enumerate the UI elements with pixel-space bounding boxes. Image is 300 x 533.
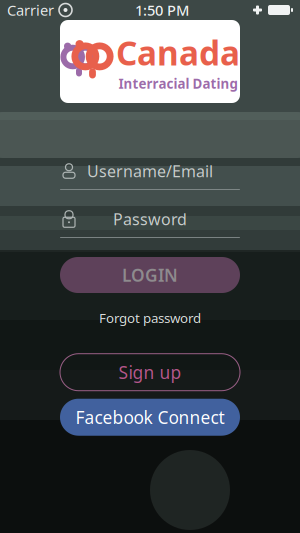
button[interactable]: LOGIN <box>60 257 240 293</box>
button[interactable]: Sign up <box>60 354 240 391</box>
staticText: Carrier <box>7 0 54 20</box>
staticText: 1:50 PM <box>135 0 189 20</box>
staticText: Sign up <box>118 361 181 384</box>
staticText: Forgot password <box>99 309 201 327</box>
staticText: Password <box>113 208 187 230</box>
staticText: Facebook Connect <box>75 406 224 429</box>
staticText: Interracial Dating <box>118 75 237 92</box>
staticText: LOGIN <box>122 263 178 286</box>
staticText: Canada <box>116 30 240 75</box>
button[interactable]: Facebook Connect <box>60 399 240 436</box>
staticText: Username/Email <box>87 160 213 182</box>
button[interactable]: Forgot password <box>89 306 211 330</box>
